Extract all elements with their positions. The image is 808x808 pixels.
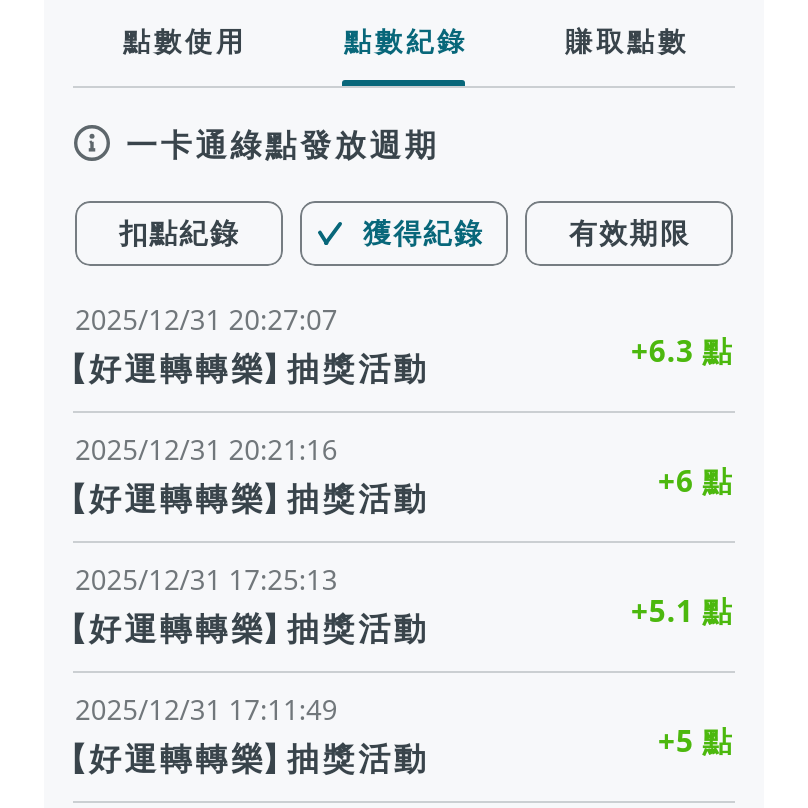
button[interactable]: 點數使用	[73, 0, 293, 88]
staticText: 2025/12/31 20:21:16	[75, 431, 338, 468]
button[interactable]: 有效期限	[525, 201, 733, 266]
staticText: 賺取點數	[563, 25, 687, 59]
staticText: +6.3 點	[630, 330, 733, 370]
button[interactable]: 2025/12/31 20:27:07	[44, 283, 764, 413]
button[interactable]: 2025/12/31 20:21:16	[44, 413, 764, 543]
staticText: 】	[265, 349, 282, 389]
button[interactable]: 點數紀錄	[293, 0, 514, 88]
staticText: 好運轉轉樂	[87, 739, 265, 779]
staticText: 】	[265, 739, 282, 779]
staticText: 扣點紀錄	[119, 216, 241, 251]
staticText: 】	[265, 609, 282, 649]
staticText: +6 點	[658, 460, 733, 500]
staticText: 一卡通綠點發放週期	[126, 126, 440, 165]
staticText: 】	[265, 479, 282, 519]
staticText: 2025/12/31 17:11:49	[75, 691, 338, 728]
button[interactable]: 賺取點數	[514, 0, 735, 88]
staticText: 點數紀錄	[342, 25, 466, 59]
staticText: 2025/12/31 20:27:07	[75, 301, 338, 338]
staticText: 抽獎活動	[287, 349, 430, 389]
staticText: 好運轉轉樂	[87, 609, 265, 649]
staticText: +5.1 點	[630, 590, 733, 630]
staticText: 好運轉轉樂	[87, 349, 265, 389]
staticText: 2025/12/31 17:25:13	[75, 561, 338, 598]
staticText: 有效期限	[569, 216, 691, 251]
staticText: 獲得紀錄	[363, 216, 485, 251]
other: Information	[74, 125, 110, 161]
staticText: +5 點	[658, 720, 733, 760]
staticText: 抽獎活動	[287, 609, 430, 649]
staticText: 抽獎活動	[287, 739, 430, 779]
button[interactable]: 2025/12/31 17:11:49	[44, 673, 764, 803]
button[interactable]: Information	[44, 88, 764, 199]
button[interactable]: 2025/12/31 17:25:13	[44, 543, 764, 673]
staticText: 好運轉轉樂	[87, 479, 265, 519]
button[interactable]: 扣點紀錄	[75, 201, 283, 266]
button[interactable]: 獲得紀錄	[300, 201, 508, 266]
staticText: 抽獎活動	[287, 479, 430, 519]
staticText: 點數使用	[121, 25, 245, 59]
